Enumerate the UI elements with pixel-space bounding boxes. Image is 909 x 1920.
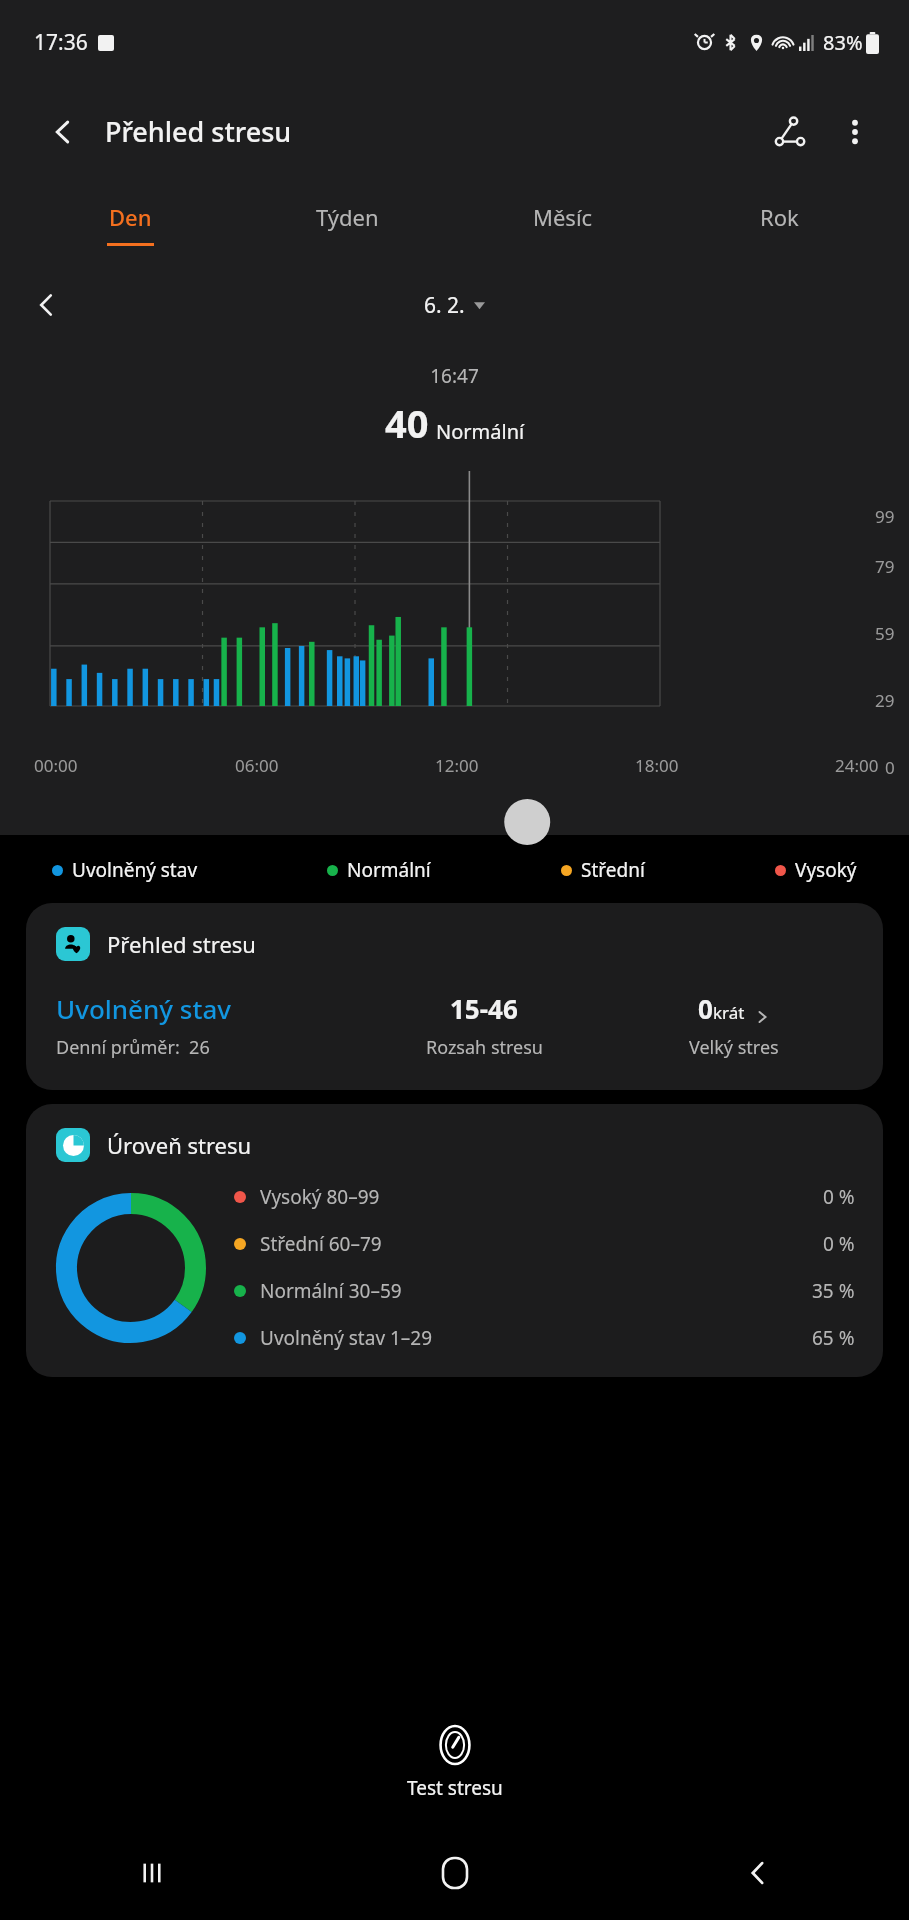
staticText: Rok	[760, 202, 799, 232]
button[interactable]: Týden	[239, 179, 455, 269]
staticText: Velký stres	[689, 1035, 779, 1060]
staticText: Týden	[316, 202, 379, 232]
staticText: Normální	[436, 418, 525, 445]
button[interactable]: Back	[606, 1825, 909, 1920]
staticText: 0 %	[823, 1184, 855, 1210]
button[interactable]: Home	[303, 1825, 606, 1920]
staticText: 99	[875, 505, 895, 528]
button[interactable]: Rok	[671, 179, 887, 269]
button[interactable]: 6. 2.	[424, 291, 485, 320]
staticText: krát	[713, 1001, 745, 1024]
staticText: Den	[109, 202, 152, 232]
staticText: 35 %	[812, 1278, 855, 1304]
button[interactable]: Přehled stresu	[26, 903, 883, 1090]
staticText: 29	[875, 689, 895, 712]
button[interactable]: Previous day	[22, 281, 70, 329]
staticText: Vysoký	[795, 857, 857, 883]
staticText: Denní průměr: 26	[56, 1035, 210, 1060]
staticText: 24:00	[835, 754, 879, 777]
button[interactable]: Share	[763, 104, 819, 160]
staticText: Test stresu	[407, 1775, 503, 1801]
staticText: 16:47	[0, 363, 909, 389]
staticText: 12:00	[435, 754, 479, 777]
staticText: 06:00	[235, 754, 279, 777]
staticText: 18:00	[635, 754, 679, 777]
button[interactable]: Recent apps	[0, 1825, 303, 1920]
staticText: 65 %	[812, 1325, 855, 1351]
staticText: 00:00	[34, 754, 78, 777]
staticText: Střední 60–79	[260, 1231, 382, 1257]
button[interactable]: Test stresu	[0, 1726, 909, 1801]
staticText: 40	[385, 397, 429, 449]
staticText: Uvolněný stav	[72, 857, 198, 883]
staticText: Úroveň stresu	[107, 1130, 252, 1160]
staticText: Vysoký 80–99	[260, 1184, 380, 1210]
staticText: Měsíc	[533, 202, 593, 232]
staticText: Normální 30–59	[260, 1278, 402, 1304]
staticText: 15-46	[450, 991, 518, 1026]
staticText: Rozsah stresu	[426, 1035, 543, 1060]
button[interactable]: Měsíc	[455, 179, 671, 269]
staticText: Normální	[347, 857, 431, 883]
button[interactable]: Back	[40, 109, 86, 155]
staticText: Přehled stresu	[105, 113, 292, 150]
staticText: 0 %	[823, 1231, 855, 1257]
staticText: Střední	[581, 857, 645, 883]
staticText: 83%	[823, 29, 863, 56]
staticText: Uvolněný stav 1–29	[260, 1325, 433, 1351]
staticText: 17:36	[34, 28, 88, 57]
button[interactable]: Úroveň stresu	[26, 1104, 883, 1377]
button[interactable]: More options	[827, 104, 883, 160]
button[interactable]: Den	[22, 179, 239, 269]
staticText: 0	[885, 756, 895, 779]
staticText: 59	[875, 622, 895, 645]
staticText: Uvolněný stav	[56, 991, 231, 1026]
staticText: 6. 2.	[424, 291, 465, 320]
staticText: 79	[875, 555, 895, 578]
staticText: Přehled stresu	[107, 929, 256, 959]
staticText: 0	[698, 991, 713, 1026]
